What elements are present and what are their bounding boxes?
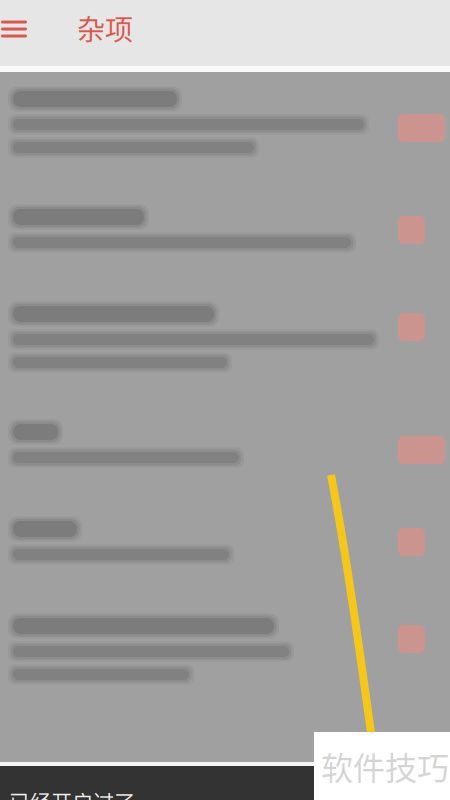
button[interactable] xyxy=(0,599,450,717)
staticText: 软件技巧 xyxy=(321,743,449,789)
button[interactable] xyxy=(0,287,450,405)
button[interactable] xyxy=(0,405,450,502)
staticText: 杂项 xyxy=(77,8,133,48)
button[interactable]: Menu xyxy=(0,10,45,55)
button[interactable] xyxy=(0,502,450,599)
button[interactable] xyxy=(0,72,450,190)
button[interactable] xyxy=(0,190,450,287)
staticText: 已经开启过了 xyxy=(9,786,135,800)
